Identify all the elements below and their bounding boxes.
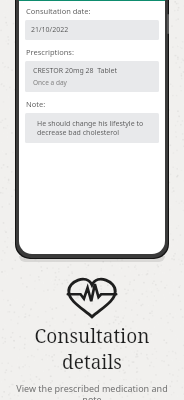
button[interactable]: He should change his lifestyle to decrea…	[25, 113, 159, 143]
button[interactable]: 21/10/2022	[25, 20, 159, 40]
button[interactable]: CRESTOR 20mg 28 Tablet	[25, 61, 159, 92]
staticText: Prescriptions:	[26, 47, 74, 57]
staticText: Consultation date:	[26, 6, 91, 16]
staticText: Consultation details	[12, 323, 172, 375]
staticText: Note:	[26, 99, 46, 109]
staticText: 21/10/2022	[31, 25, 69, 35]
staticText: He should change his lifestyle to decrea…	[37, 119, 153, 137]
staticText: Once a day	[33, 78, 67, 87]
other: Consultation details	[66, 268, 118, 320]
staticText: CRESTOR 20mg 28 Tablet	[33, 66, 118, 76]
staticText: View the prescribed medication and note	[12, 382, 172, 400]
